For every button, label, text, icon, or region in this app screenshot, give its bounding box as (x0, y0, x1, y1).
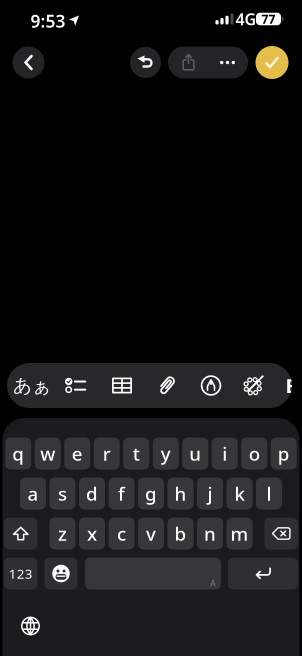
button[interactable]: c (108, 517, 134, 549)
staticText: x (87, 521, 97, 546)
staticText: z (58, 521, 67, 546)
staticText: 4G (235, 8, 256, 30)
button[interactable]: Delete (264, 517, 298, 549)
button[interactable]: Emoji (44, 557, 77, 589)
staticText: h (174, 481, 186, 506)
button[interactable]: Writing Tools (233, 363, 273, 408)
button[interactable]: i (212, 437, 238, 469)
button[interactable]: k (226, 477, 252, 509)
staticText: y (161, 441, 171, 466)
button[interactable]: d (79, 477, 105, 509)
staticText: u (189, 441, 201, 466)
button[interactable]: y (153, 437, 179, 469)
staticText: l (266, 481, 271, 506)
staticText: v (146, 521, 156, 546)
button[interactable]: v (138, 517, 164, 549)
staticText: p (278, 441, 290, 466)
button[interactable]: b (167, 517, 193, 549)
staticText: s (58, 481, 67, 506)
button[interactable]: 123 (4, 557, 37, 589)
staticText: t (133, 441, 140, 466)
button[interactable]: More (207, 46, 247, 78)
staticText: g (145, 481, 157, 506)
staticText: o (249, 441, 260, 466)
staticText: B (285, 372, 298, 399)
button[interactable]: Format (12, 363, 52, 408)
staticText: あぁ (13, 374, 51, 397)
button[interactable]: Space (85, 557, 221, 589)
staticText: f (118, 481, 125, 506)
staticText: 123 (9, 565, 33, 582)
staticText: r (103, 441, 111, 466)
button[interactable]: x (79, 517, 105, 549)
button[interactable]: Attach (146, 363, 186, 408)
button[interactable]: Checklist (55, 363, 95, 408)
button[interactable]: Return (228, 557, 298, 589)
staticText: b (174, 521, 186, 546)
button[interactable]: e (64, 437, 90, 469)
button[interactable]: Back (12, 46, 44, 78)
button[interactable]: l (256, 477, 282, 509)
button[interactable]: u (182, 437, 208, 469)
button[interactable]: j (197, 477, 223, 509)
button[interactable]: Share (168, 46, 208, 78)
button[interactable]: Table (102, 363, 142, 408)
button[interactable]: p (271, 437, 297, 469)
button[interactable]: Shift (4, 517, 37, 549)
staticText: k (234, 481, 244, 506)
staticText: 77 (261, 11, 275, 27)
button[interactable]: r (94, 437, 120, 469)
staticText: q (12, 441, 24, 466)
staticText: c (117, 521, 126, 546)
staticText: w (40, 441, 55, 466)
button[interactable]: h (167, 477, 193, 509)
button[interactable]: n (197, 517, 223, 549)
staticText: A (210, 578, 215, 589)
staticText: n (204, 521, 216, 546)
button[interactable]: f (108, 477, 134, 509)
button[interactable]: o (241, 437, 267, 469)
button[interactable]: Bold (280, 363, 302, 408)
button[interactable]: Undo (130, 47, 161, 78)
button[interactable]: m (226, 517, 252, 549)
button[interactable]: Done (255, 46, 288, 79)
staticText: m (230, 521, 248, 546)
staticText: 9:53 (30, 9, 65, 32)
button[interactable]: g (138, 477, 164, 509)
button[interactable]: Next keyboard (15, 611, 45, 641)
button[interactable]: q (5, 437, 31, 469)
staticText: j (207, 481, 212, 506)
button[interactable]: t (123, 437, 149, 469)
button[interactable]: s (49, 477, 75, 509)
staticText: a (27, 481, 38, 506)
button[interactable]: a (20, 477, 46, 509)
button[interactable]: w (35, 437, 61, 469)
button[interactable]: Markup (191, 363, 231, 408)
staticText: e (72, 441, 83, 466)
button[interactable]: z (49, 517, 75, 549)
staticText: d (86, 481, 98, 506)
staticText: i (222, 441, 227, 466)
